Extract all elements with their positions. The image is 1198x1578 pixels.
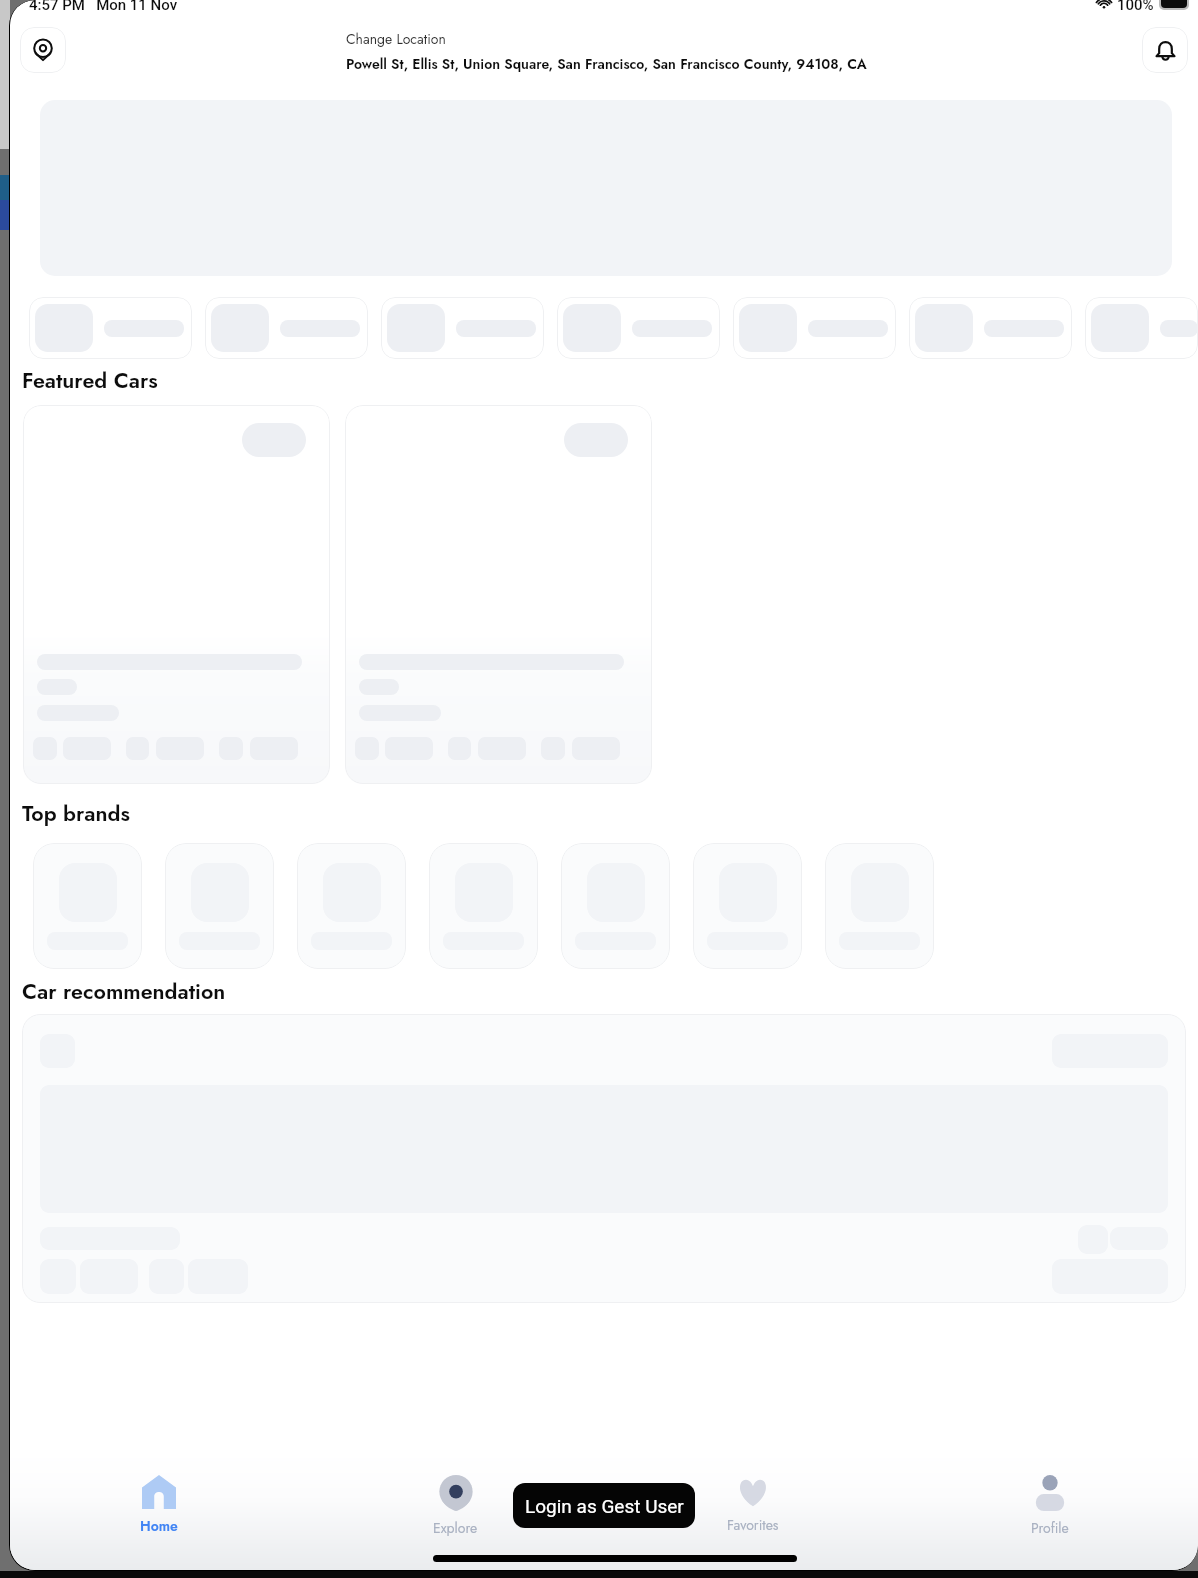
staticText: Login as Gest User	[525, 1495, 684, 1517]
button[interactable]	[1085, 297, 1198, 359]
button[interactable]	[297, 843, 406, 969]
button[interactable]	[429, 843, 538, 969]
button[interactable]: Home	[10, 1450, 307, 1570]
button[interactable]	[33, 843, 142, 969]
staticText: Featured Cars	[22, 365, 158, 396]
button[interactable]	[29, 297, 192, 359]
button[interactable]	[345, 405, 652, 784]
staticText: Favorites	[727, 1515, 779, 1535]
button[interactable]	[165, 843, 274, 969]
button[interactable]	[693, 843, 802, 969]
staticText: 4:57 PM Mon 11 Nov	[29, 0, 178, 14]
button[interactable]: Profile	[901, 1450, 1198, 1570]
staticText: Top brands	[22, 798, 130, 829]
button[interactable]	[22, 1014, 1186, 1303]
staticText: Explore	[433, 1518, 478, 1538]
button[interactable]	[205, 297, 368, 359]
button[interactable]	[557, 297, 720, 359]
button[interactable]: Change location	[20, 27, 66, 73]
button[interactable]	[909, 297, 1072, 359]
button[interactable]	[825, 843, 934, 969]
staticText: Powell St, Ellis St, Union Square, San F…	[346, 54, 867, 74]
staticText: Car recommendation	[22, 976, 226, 1007]
button[interactable]	[733, 297, 896, 359]
staticText: Profile	[1031, 1518, 1069, 1538]
button[interactable]	[23, 405, 330, 784]
button[interactable]: Explore	[307, 1450, 604, 1570]
button[interactable]	[561, 843, 670, 969]
button[interactable]	[381, 297, 544, 359]
staticText: Home	[140, 1516, 178, 1536]
button[interactable]: Favorites	[604, 1450, 901, 1570]
staticText: 100%	[1117, 0, 1154, 14]
button[interactable]: Login as Gest User	[513, 1483, 695, 1528]
staticText: Change Location	[346, 29, 446, 49]
button[interactable]: Notifications	[1142, 27, 1188, 73]
